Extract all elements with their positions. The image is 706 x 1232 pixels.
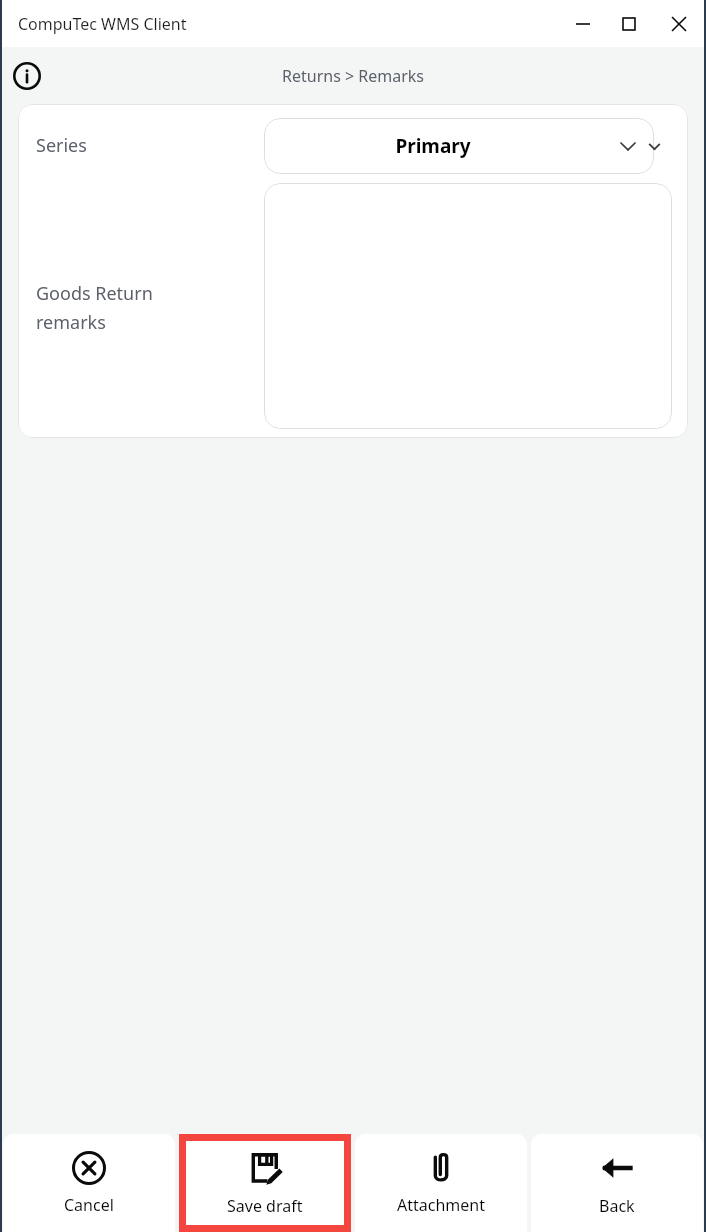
staticText: Returns > Remarks [282,65,425,87]
button[interactable]: Back [531,1134,703,1232]
button[interactable]: Minimize [560,0,606,47]
button[interactable]: Maximize [606,0,652,47]
staticText: Cancel [64,1194,114,1216]
button[interactable]: Expand series options [638,130,670,162]
staticText: Back [599,1195,635,1217]
button[interactable]: Information [8,57,46,95]
staticText: Attachment [397,1194,485,1216]
staticText: Primary [264,133,602,159]
button[interactable]: Cancel [3,1134,175,1232]
staticText: Goods Return remarks [36,281,153,334]
button[interactable]: Primary [264,118,654,174]
button[interactable]: Attachment [355,1134,527,1232]
staticText: Series [36,133,87,158]
button[interactable]: Save draft [179,1134,351,1232]
button[interactable]: Close [652,0,706,47]
staticText: CompuTec WMS Client [18,13,187,35]
button[interactable] [264,183,672,429]
staticText: Save draft [227,1195,303,1217]
